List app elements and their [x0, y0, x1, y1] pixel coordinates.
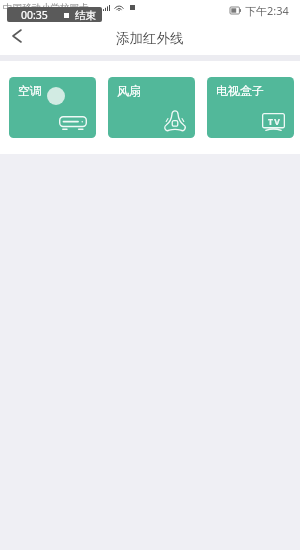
button[interactable]: 电视盒子 — [207, 77, 294, 138]
staticText: 下午2:34 — [245, 3, 289, 18]
staticText: 添加红外线 — [116, 30, 184, 47]
staticText: TV — [268, 116, 282, 128]
staticText: 空调 — [18, 83, 42, 98]
button[interactable]: 空调 — [9, 77, 96, 138]
staticText: 结束 — [75, 9, 96, 22]
staticText: 00:35 — [21, 8, 48, 22]
button[interactable]: Back — [0, 23, 32, 55]
staticText: 中国移动小学校园卡 — [3, 2, 89, 14]
staticText: 风扇 — [117, 83, 141, 98]
button[interactable]: 风扇 — [108, 77, 195, 138]
staticText: 电视盒子 — [216, 83, 264, 98]
